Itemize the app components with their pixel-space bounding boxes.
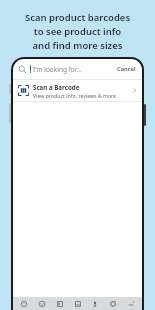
staticText: View product info, reviews & more	[33, 92, 117, 99]
staticText: Scan product barcodes	[0, 11, 155, 24]
button[interactable]: Voice input	[90, 299, 100, 309]
button[interactable]: Stickers	[19, 299, 29, 309]
button[interactable]: Scan a Barcode	[13, 80, 142, 101]
button[interactable]: GIF	[55, 299, 65, 309]
button[interactable]: Clipboard	[73, 299, 83, 309]
button[interactable]: More options	[126, 299, 136, 309]
staticText: and find more sizes	[0, 39, 155, 52]
staticText: I'm looking for...	[33, 65, 116, 74]
staticText: Cancel	[117, 65, 136, 73]
button[interactable]: Emoji	[37, 299, 47, 309]
button[interactable]: Cancel	[116, 63, 137, 75]
staticText: Scan a Barcode	[33, 83, 80, 91]
staticText: to see product info	[0, 25, 155, 38]
button[interactable]: Settings	[108, 299, 118, 309]
